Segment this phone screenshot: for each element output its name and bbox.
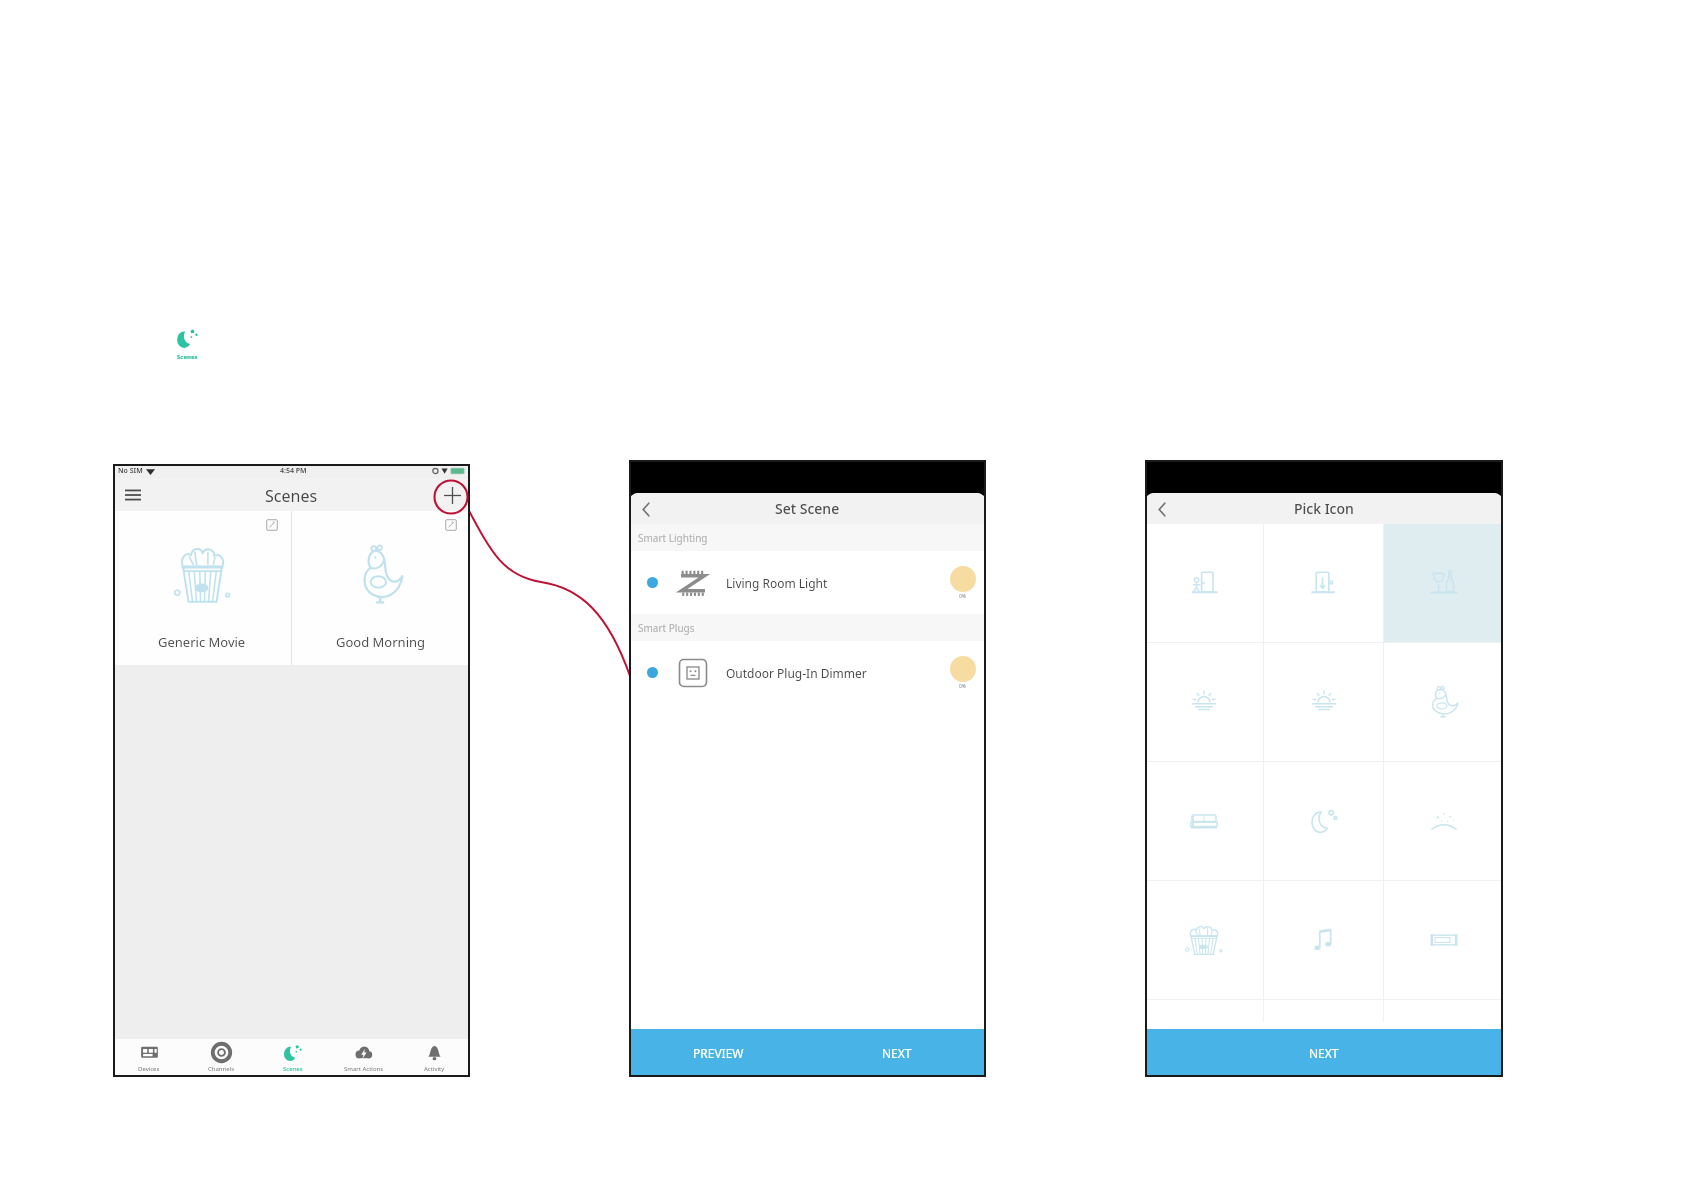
staticText: Scenes (177, 353, 198, 361)
button[interactable] (1264, 524, 1383, 642)
button[interactable]: Living Room Light (629, 551, 986, 614)
button[interactable]: Channels (185, 1039, 257, 1077)
button[interactable] (1145, 524, 1263, 642)
button[interactable]: Devices (113, 1039, 185, 1077)
button[interactable]: Activity (399, 1039, 470, 1077)
staticText: Outdoor Plug-In Dimmer (726, 665, 867, 681)
button[interactable] (1145, 762, 1263, 880)
button[interactable] (1384, 881, 1503, 999)
button[interactable]: Smart Actions (328, 1039, 399, 1077)
button[interactable] (1384, 524, 1503, 642)
staticText: Set Scene (775, 499, 840, 518)
staticText: Channels (208, 1065, 235, 1073)
button[interactable]: NEXT (807, 1029, 986, 1077)
staticText: Pick Icon (1294, 499, 1354, 518)
button[interactable] (1384, 762, 1503, 880)
staticText: Generic Movie (158, 633, 246, 651)
staticText: 0% (959, 593, 967, 600)
button[interactable]: Edit scene (265, 518, 279, 532)
button[interactable]: Edit scene (292, 511, 470, 665)
button[interactable] (1264, 762, 1383, 880)
button[interactable] (1264, 881, 1383, 999)
button[interactable]: NEXT (1145, 1029, 1503, 1077)
staticText: Good Morning (336, 633, 426, 651)
button[interactable]: PREVIEW (629, 1029, 807, 1077)
staticText: Scenes (265, 485, 318, 507)
button[interactable]: Scenes (257, 1039, 328, 1077)
button[interactable] (1264, 643, 1383, 761)
button[interactable]: Edit scene (113, 511, 291, 665)
staticText: 4:54 PM (280, 466, 307, 476)
button[interactable]: Back (635, 498, 657, 520)
staticText: NEXT (1309, 1045, 1339, 1061)
button[interactable]: Edit scene (444, 518, 458, 532)
staticText: Activity (424, 1065, 445, 1073)
button[interactable]: Menu (121, 483, 145, 507)
staticText: NEXT (882, 1045, 912, 1061)
staticText: Scenes (283, 1065, 303, 1073)
staticText: PREVIEW (693, 1045, 744, 1061)
button[interactable] (1384, 643, 1503, 761)
staticText: Smart Actions (344, 1065, 384, 1073)
staticText: Smart Lighting (638, 531, 708, 545)
button[interactable] (1145, 643, 1263, 761)
button[interactable]: Back (1151, 498, 1173, 520)
button[interactable]: Add scene (440, 483, 464, 507)
staticText: 0% (959, 683, 967, 690)
button[interactable]: Outdoor Plug-In Dimmer (629, 641, 986, 704)
button[interactable] (1145, 881, 1263, 999)
staticText: Devices (138, 1065, 160, 1073)
staticText: Smart Plugs (638, 621, 695, 635)
staticText: Living Room Light (726, 575, 828, 591)
staticText: No SIM (118, 466, 143, 476)
